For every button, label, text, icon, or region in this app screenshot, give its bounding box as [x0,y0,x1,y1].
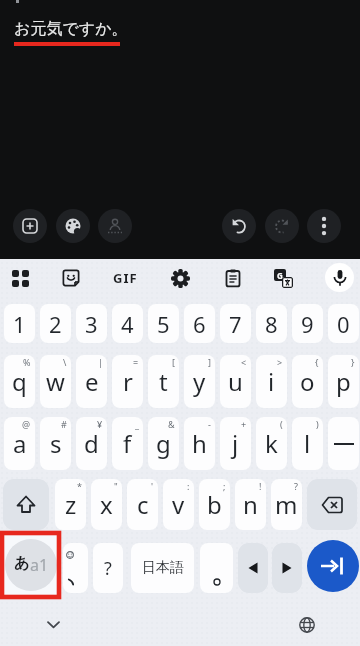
button[interactable]: t [148,355,179,408]
staticText: v [172,488,185,521]
staticText: u [228,365,243,398]
staticText: c [137,488,149,521]
staticText: ] [208,356,211,368]
staticText: ? [104,556,112,581]
button[interactable]: c [127,479,158,530]
staticText: 6 [193,309,206,339]
staticText: 2 [49,309,62,339]
button[interactable]: w [40,355,71,408]
button[interactable]: G [267,262,300,294]
button[interactable] [55,262,87,294]
staticText: w [46,365,65,398]
staticText: - [208,418,211,430]
button[interactable] [292,610,322,640]
staticText: _ [135,418,139,430]
button[interactable]: 9 [292,304,323,343]
button[interactable]: f [112,417,143,470]
button[interactable] [265,209,299,243]
staticText: | [98,356,103,368]
button[interactable]: あ [5,539,57,591]
staticText: z [65,488,77,521]
button[interactable] [238,543,268,593]
button[interactable]: g [148,417,179,470]
button[interactable] [3,479,49,530]
button[interactable]: u [220,355,251,408]
button[interactable] [56,209,90,243]
button[interactable]: o [292,355,323,408]
button[interactable]: a [4,417,35,470]
staticText: あ [14,554,30,573]
button[interactable] [13,209,47,243]
button[interactable]: 8 [256,304,287,343]
button[interactable]: e [76,355,107,408]
staticText: y [193,365,206,398]
button[interactable]: n [235,479,266,530]
button[interactable] [217,262,249,294]
button[interactable] [4,262,36,294]
button[interactable]: 3 [76,304,107,343]
button[interactable] [63,543,88,593]
staticText: o [300,365,315,398]
staticText: 5 [157,309,170,339]
staticText: 1 [13,309,26,339]
button[interactable]: 日本語 [131,543,194,593]
button[interactable] [272,543,302,593]
button[interactable]: j [220,417,251,470]
button[interactable]: r [112,355,143,408]
staticText: 日本語 [142,559,184,577]
button[interactable]: 7 [220,304,251,343]
button[interactable]: m [271,479,302,530]
staticText: h [192,427,207,460]
button[interactable] [307,209,341,243]
staticText: b [207,488,222,521]
staticText: n [243,488,258,521]
button[interactable]: 1 [4,304,35,343]
button[interactable]: ? [93,543,123,593]
button[interactable]: l [292,417,323,470]
button[interactable] [200,543,233,593]
staticText: e [85,365,99,398]
button[interactable]: h [184,417,215,470]
button[interactable] [307,479,357,530]
button[interactable]: y [184,355,215,408]
staticText: 3 [85,309,98,339]
staticText: g [156,427,171,460]
button[interactable]: 5 [148,304,179,343]
button[interactable]: 6 [184,304,215,343]
staticText: f [123,427,132,460]
staticText: 7 [229,309,242,339]
button[interactable]: 2 [40,304,71,343]
staticText: s [50,427,62,460]
button[interactable]: x [91,479,122,530]
button[interactable]: k [256,417,287,470]
button[interactable]: d [76,417,107,470]
staticText: # [61,418,67,430]
button[interactable] [307,540,359,592]
button[interactable] [222,209,256,243]
button[interactable] [38,610,68,640]
button[interactable]: b [199,479,230,530]
staticText: ! [259,480,262,492]
button[interactable]: 4 [112,304,143,343]
staticText: : [187,480,190,492]
staticText: G [277,270,283,281]
staticText: + [241,418,247,430]
staticText: 0 [337,309,350,339]
staticText: \ [63,356,67,368]
button[interactable]: p [328,355,359,408]
button[interactable]: q [4,355,35,408]
button[interactable] [328,417,359,470]
button[interactable]: z [55,479,86,530]
staticText: = [133,356,139,368]
button[interactable]: 0 [328,304,359,343]
button[interactable] [325,263,354,292]
button[interactable] [98,209,132,243]
button[interactable]: s [40,417,71,470]
button[interactable]: v [163,479,194,530]
button[interactable] [164,262,196,294]
staticText: 4 [121,309,134,339]
staticText: l [304,427,311,460]
button[interactable]: GIF [105,262,145,294]
staticText: お元気ですか。 [14,19,128,39]
button[interactable]: i [256,355,287,408]
